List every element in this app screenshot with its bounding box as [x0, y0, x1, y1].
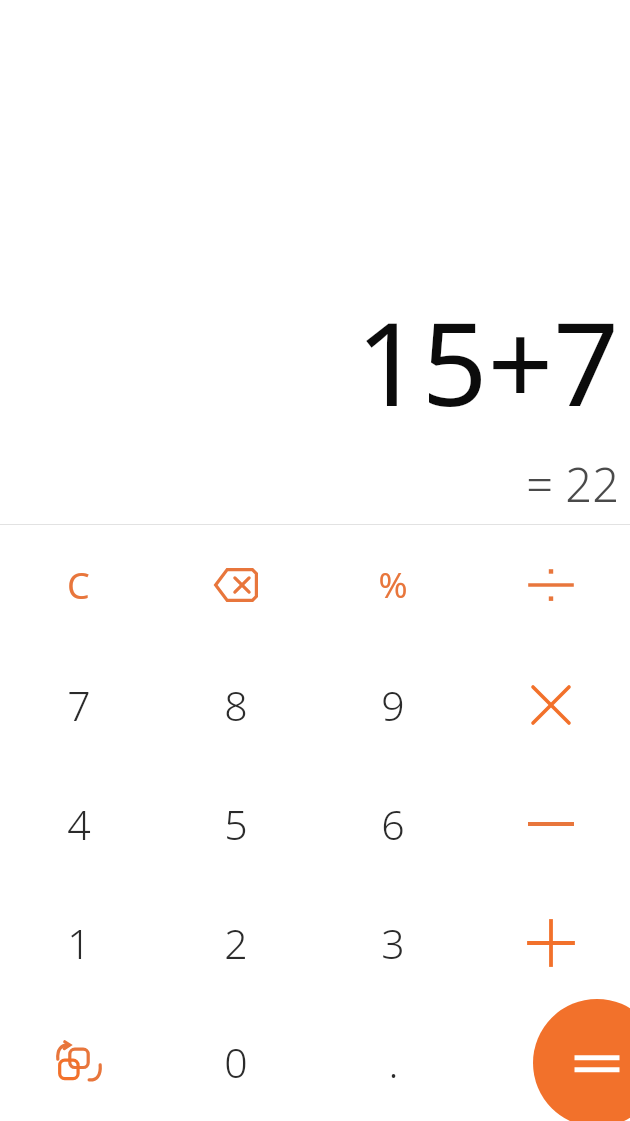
button[interactable]: C [0, 525, 157, 645]
staticText: 15+7 [355, 283, 619, 440]
button[interactable]: 1 [0, 883, 157, 1002]
staticText: 3 [381, 915, 405, 971]
staticText: C [67, 561, 90, 610]
button[interactable]: 5 [157, 764, 314, 883]
button[interactable]: 3 [314, 883, 472, 1002]
button[interactable]: Backspace [157, 525, 314, 645]
staticText: % [378, 561, 408, 609]
staticText: 1 [67, 915, 91, 971]
button[interactable]: % [314, 525, 472, 645]
staticText: 2 [224, 915, 248, 971]
staticText: 6 [381, 796, 405, 852]
button[interactable]: Plus [472, 883, 630, 1002]
button[interactable]: 4 [0, 764, 157, 883]
button[interactable]: 0 [157, 1002, 314, 1121]
button[interactable]: . [314, 1002, 472, 1121]
staticText: 8 [224, 677, 248, 733]
staticText: 4 [67, 796, 91, 852]
staticText: 5 [224, 796, 248, 852]
button[interactable]: 8 [157, 645, 314, 764]
staticText: = 22 [526, 452, 619, 516]
button[interactable]: Divide [472, 525, 630, 645]
button[interactable]: 7 [0, 645, 157, 764]
button[interactable]: Unit converter [0, 1002, 157, 1121]
staticText: 9 [381, 677, 405, 733]
button[interactable]: Equals [533, 999, 630, 1121]
button[interactable]: 2 [157, 883, 314, 1002]
button[interactable]: 6 [314, 764, 472, 883]
staticText: 0 [224, 1034, 248, 1090]
staticText: . [388, 1034, 399, 1090]
button[interactable]: 9 [314, 645, 472, 764]
staticText: 7 [67, 677, 91, 733]
button[interactable]: Minus [472, 764, 630, 883]
button[interactable]: Multiply [472, 645, 630, 764]
